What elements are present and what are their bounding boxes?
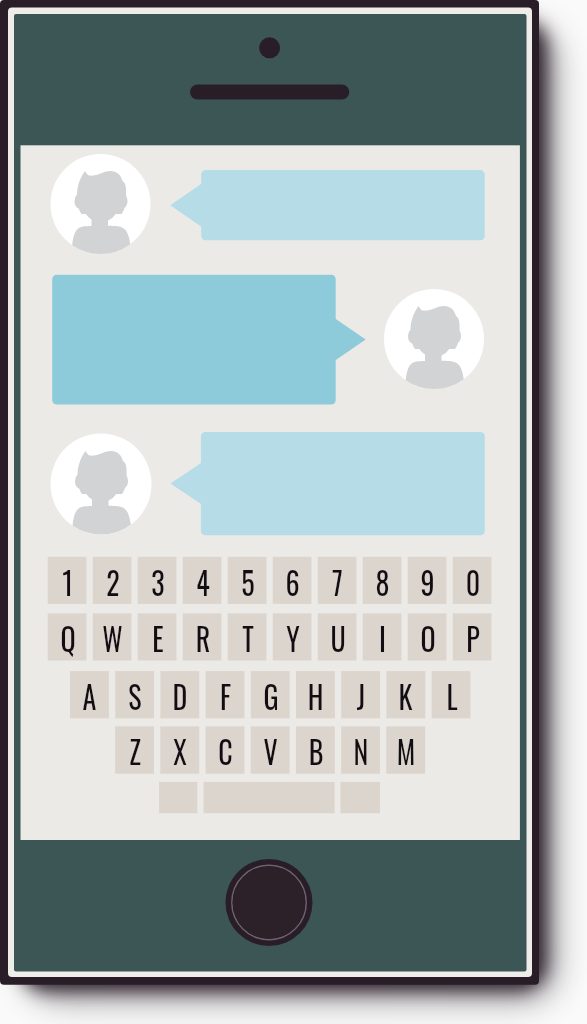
- button[interactable]: M: [386, 726, 425, 773]
- button[interactable]: Q: [48, 613, 87, 660]
- button[interactable]: 3: [138, 557, 177, 604]
- staticText: 2: [106, 557, 120, 604]
- staticText: O: [420, 613, 436, 660]
- staticText: U: [330, 613, 346, 660]
- button[interactable]: Z: [115, 726, 154, 773]
- button[interactable]: G: [251, 671, 290, 718]
- staticText: M: [397, 726, 415, 773]
- staticText: X: [173, 726, 187, 773]
- staticText: G: [263, 671, 279, 718]
- button[interactable]: X: [160, 726, 199, 773]
- button[interactable]: Home: [226, 859, 313, 946]
- button[interactable]: N: [341, 726, 380, 773]
- button[interactable]: E: [138, 613, 177, 660]
- button[interactable]: C: [206, 726, 245, 773]
- button[interactable]: 2: [93, 557, 132, 604]
- button[interactable]: K: [386, 671, 425, 718]
- button[interactable]: F: [206, 671, 245, 718]
- staticText: W: [102, 613, 123, 660]
- button[interactable]: S: [115, 671, 154, 718]
- staticText: 1: [62, 557, 73, 604]
- button[interactable]: D: [160, 671, 199, 718]
- button[interactable]: Y: [273, 613, 312, 660]
- button[interactable]: U: [318, 613, 357, 660]
- button[interactable]: 0: [453, 557, 492, 604]
- button[interactable]: O: [408, 613, 447, 660]
- button[interactable]: P: [453, 613, 492, 660]
- button[interactable]: 5: [228, 557, 267, 604]
- staticText: D: [172, 671, 188, 718]
- staticText: 7: [332, 557, 343, 604]
- button[interactable]: T: [228, 613, 267, 660]
- button[interactable]: 1: [48, 557, 87, 604]
- button[interactable]: 4: [183, 557, 222, 604]
- staticText: N: [353, 726, 369, 773]
- staticText: C: [218, 726, 233, 773]
- button[interactable]: 8: [363, 557, 402, 604]
- staticText: I: [379, 613, 386, 660]
- staticText: H: [307, 671, 324, 718]
- button[interactable]: R: [183, 613, 222, 660]
- staticText: 9: [420, 557, 435, 604]
- staticText: B: [308, 726, 324, 773]
- staticText: 5: [241, 557, 255, 604]
- staticText: Z: [129, 726, 141, 773]
- staticText: L: [446, 671, 458, 718]
- button[interactable]: H: [296, 671, 335, 718]
- button[interactable]: B: [296, 726, 335, 773]
- staticText: T: [242, 613, 254, 660]
- button[interactable]: L: [432, 671, 471, 718]
- staticText: R: [195, 613, 211, 660]
- button[interactable]: J: [341, 671, 380, 718]
- staticText: 0: [465, 557, 481, 604]
- button[interactable]: W: [93, 613, 132, 660]
- staticText: 6: [285, 557, 300, 604]
- button[interactable]: A: [70, 671, 109, 718]
- button[interactable]: V: [251, 726, 290, 773]
- staticText: A: [82, 671, 97, 718]
- button[interactable]: 9: [408, 557, 447, 604]
- button[interactable]: 7: [318, 557, 357, 604]
- button[interactable]: 6: [273, 557, 312, 604]
- staticText: V: [263, 726, 278, 773]
- staticText: K: [398, 671, 413, 718]
- button[interactable]: I: [363, 613, 402, 660]
- staticText: S: [128, 671, 142, 718]
- staticText: 8: [375, 557, 390, 604]
- staticText: Y: [286, 613, 300, 660]
- staticText: P: [466, 613, 480, 660]
- staticText: E: [152, 613, 164, 660]
- staticText: J: [357, 671, 365, 718]
- staticText: 4: [196, 557, 210, 604]
- staticText: F: [220, 671, 231, 718]
- staticText: 3: [151, 557, 165, 604]
- staticText: Q: [60, 613, 76, 660]
